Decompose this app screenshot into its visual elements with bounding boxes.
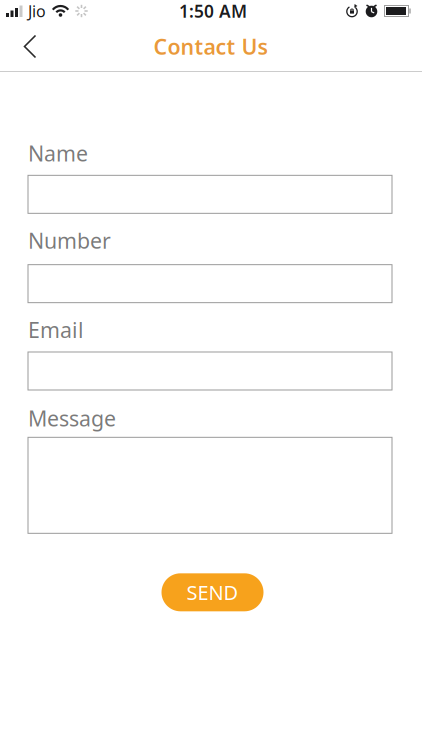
button[interactable]: SEND [161, 573, 263, 611]
staticText: Number [28, 226, 111, 255]
staticText: 1:50 AM [179, 0, 247, 22]
staticText: Email [28, 316, 84, 344]
staticText: SEND [186, 579, 238, 606]
staticText: Name [28, 139, 88, 167]
button[interactable]: Back [0, 24, 49, 68]
staticText: Contact Us [153, 32, 268, 61]
staticText: Jio [28, 0, 46, 22]
staticText: Message [28, 404, 116, 432]
